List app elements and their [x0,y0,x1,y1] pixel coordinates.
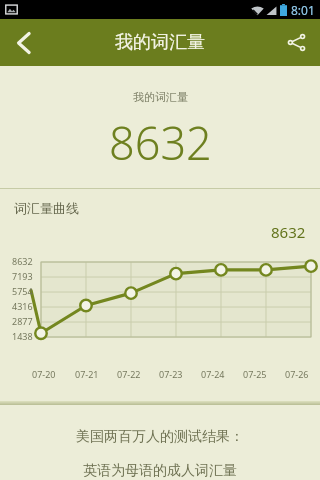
staticText: 8632 [271,222,306,242]
staticText: 07-23 [159,368,183,380]
staticText: 我的词汇量 [133,90,188,104]
staticText: 07-26 [285,368,309,380]
staticText: 4316 [12,300,33,312]
staticText: 07-25 [243,368,267,380]
button[interactable]: Share [272,19,320,66]
staticText: 7193 [12,270,33,282]
staticText: 5754 [12,285,33,297]
staticText: 英语为母语的成人词汇量 [83,462,237,480]
staticText: 07-22 [117,368,141,380]
staticText: 词汇量曲线 [14,200,79,216]
button[interactable]: Back [0,19,48,66]
staticText: 07-21 [75,368,99,380]
staticText: 2877 [12,315,33,327]
staticText: 8632 [109,112,212,173]
staticText: 8:01 [291,2,315,18]
staticText: 07-20 [32,368,56,380]
staticText: 07-24 [201,368,225,380]
staticText: 美国两百万人的测试结果： [76,428,244,446]
staticText: 1438 [12,330,33,342]
staticText: 我的词汇量 [115,31,205,54]
staticText: 8632 [12,255,33,267]
